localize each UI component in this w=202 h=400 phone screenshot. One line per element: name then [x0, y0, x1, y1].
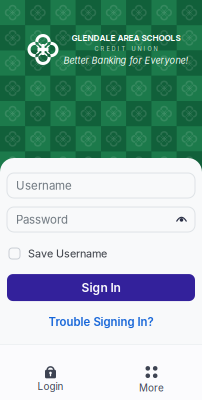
button[interactable]: Login	[0, 366, 101, 392]
staticText: Trouble Signing In?	[48, 315, 153, 329]
staticText: Password	[16, 213, 68, 226]
staticText: Sign In	[81, 280, 120, 295]
staticText: More	[139, 382, 164, 394]
staticText: GLENDALE AREA SCHOOLS	[71, 33, 180, 43]
button[interactable]: Trouble Signing In?	[48, 315, 153, 329]
staticText: Save Username	[28, 247, 107, 260]
staticText: Username	[16, 179, 72, 192]
button[interactable]: More	[101, 364, 202, 394]
button[interactable]: Sign In	[7, 274, 195, 301]
staticText: C R E D I T U N I O N	[94, 45, 157, 52]
staticText: Better Banking for Everyone!	[63, 55, 188, 66]
staticText: Login	[37, 381, 63, 392]
button[interactable]: Save Username	[9, 248, 20, 259]
